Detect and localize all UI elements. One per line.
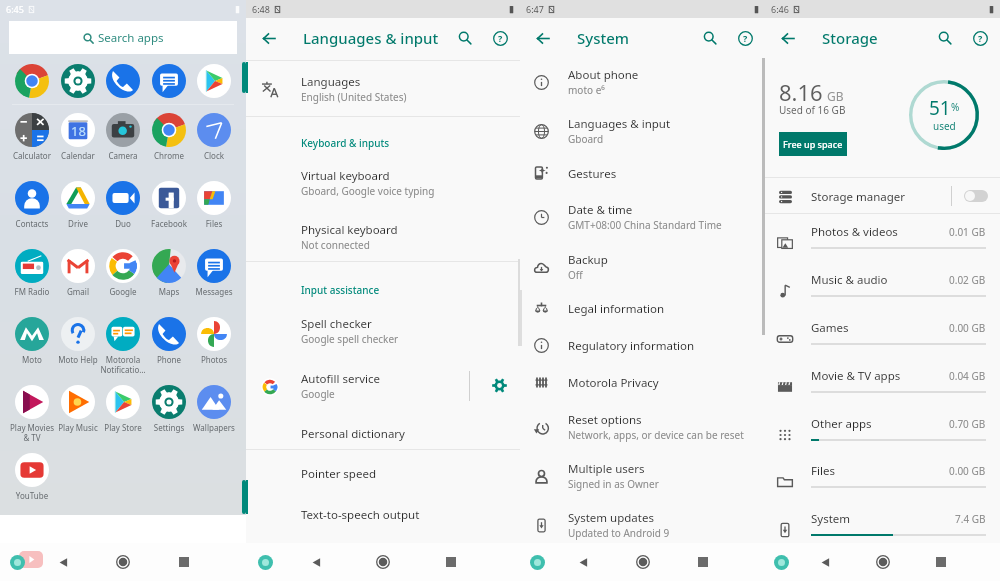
button[interactable]: Home xyxy=(632,543,654,581)
button[interactable]: FM Radio xyxy=(8,249,56,317)
button[interactable]: Help xyxy=(488,26,512,50)
button[interactable]: Back xyxy=(531,26,555,50)
button[interactable]: Languages & input xyxy=(520,104,765,153)
button[interactable]: Calculator xyxy=(8,113,56,181)
button[interactable]: Legal information xyxy=(520,288,765,325)
button[interactable]: System xyxy=(765,501,1000,549)
staticText: Maps xyxy=(145,286,193,297)
staticText: Drive xyxy=(54,218,102,229)
button[interactable]: Back xyxy=(814,543,836,581)
button[interactable]: Photos xyxy=(190,317,238,385)
button[interactable]: Drive xyxy=(54,181,102,249)
button[interactable]: Search xyxy=(698,26,722,50)
button[interactable]: Assistant xyxy=(254,543,276,581)
button[interactable]: Help xyxy=(968,26,992,50)
button[interactable]: Free up space xyxy=(779,132,847,156)
button[interactable]: Movie & TV apps xyxy=(765,358,1000,406)
button[interactable]: Maps xyxy=(145,249,193,317)
button[interactable]: Languages xyxy=(246,61,520,116)
button[interactable]: Phone xyxy=(145,317,193,385)
button[interactable]: Personal dictionary xyxy=(246,413,520,449)
button[interactable]: Reset options xyxy=(520,399,765,448)
button[interactable]: System updates xyxy=(520,497,765,546)
button[interactable]: Recents xyxy=(692,543,714,581)
button[interactable]: Wallpapers xyxy=(190,385,238,453)
button[interactable]: Motorola Notificatio… xyxy=(99,317,147,385)
button[interactable]: Pointer speed xyxy=(246,452,520,493)
staticText: Play Music xyxy=(54,422,102,433)
button[interactable]: Assistant xyxy=(6,543,28,581)
button[interactable]: Search apps xyxy=(9,21,237,54)
button[interactable] xyxy=(54,64,102,104)
button[interactable]: Back xyxy=(305,543,327,581)
staticText: ? xyxy=(498,32,503,44)
button[interactable]: Chrome xyxy=(145,113,193,181)
staticText: Google spell checker xyxy=(301,332,399,346)
button[interactable]: 18 xyxy=(54,113,102,181)
button[interactable]: Files xyxy=(765,453,1000,501)
button[interactable]: Recents xyxy=(173,543,195,581)
button[interactable]: Back xyxy=(776,26,800,50)
button[interactable]: Music & audio xyxy=(765,262,1000,310)
button[interactable]: Recents xyxy=(440,543,462,581)
button[interactable]: Text-to-speech output xyxy=(246,493,520,534)
button[interactable]: Photos & videos xyxy=(765,214,1000,262)
button[interactable]: Help xyxy=(733,26,757,50)
button[interactable]: Backup xyxy=(520,239,765,288)
button[interactable]: Messages xyxy=(190,249,238,317)
button[interactable]: Date & time xyxy=(520,190,765,239)
button[interactable]: Clock xyxy=(190,113,238,181)
button[interactable]: Motorola Privacy xyxy=(520,362,765,399)
button[interactable]: Duo xyxy=(99,181,147,249)
button[interactable]: Spell checker xyxy=(246,303,520,358)
button[interactable]: Camera xyxy=(99,113,147,181)
button[interactable]: Assistant xyxy=(770,543,792,581)
staticText: 0.00 GB xyxy=(949,464,986,478)
button[interactable] xyxy=(190,64,238,104)
button[interactable]: Google xyxy=(99,249,147,317)
button[interactable]: Back xyxy=(572,543,594,581)
staticText: Search apps xyxy=(98,30,164,46)
button[interactable]: Recents xyxy=(930,543,952,581)
staticText: Play Movies & TV xyxy=(8,422,56,443)
button[interactable]: Physical keyboard xyxy=(246,209,520,261)
button[interactable]: Play Store xyxy=(99,385,147,453)
button[interactable]: Search xyxy=(933,26,957,50)
button[interactable]: Storage manager toggle xyxy=(964,190,988,202)
button[interactable]: Storage manager xyxy=(765,178,1000,213)
button[interactable]: Play Music xyxy=(54,385,102,453)
button[interactable]: Home xyxy=(872,543,894,581)
button[interactable]: Facebook xyxy=(145,181,193,249)
button[interactable]: Virtual keyboard xyxy=(246,155,520,209)
button[interactable]: Moto xyxy=(8,317,56,385)
button[interactable]: Home xyxy=(372,543,394,581)
button[interactable]: Gestures xyxy=(520,153,765,190)
button[interactable]: Other apps xyxy=(765,406,1000,454)
button[interactable]: Files xyxy=(190,181,238,249)
button[interactable]: Back xyxy=(257,26,281,50)
button[interactable]: Autofill settings xyxy=(479,358,520,413)
button[interactable]: Moto Help xyxy=(54,317,102,385)
button[interactable]: Contacts xyxy=(8,181,56,249)
button[interactable]: Home xyxy=(112,543,134,581)
button[interactable]: Regulatory information xyxy=(520,325,765,362)
button[interactable]: Assistant xyxy=(526,543,548,581)
staticText: Legal information xyxy=(568,301,665,317)
button[interactable]: Settings xyxy=(145,385,193,453)
button[interactable]: YouTube xyxy=(8,453,56,521)
button[interactable]: Games xyxy=(765,310,1000,358)
staticText: 6:47 xyxy=(526,3,544,15)
staticText: 6:48 xyxy=(252,3,270,15)
button[interactable] xyxy=(8,64,56,104)
button[interactable]: Search xyxy=(453,26,477,50)
staticText: Gmail xyxy=(54,286,102,297)
button[interactable]: Gmail xyxy=(54,249,102,317)
button[interactable]: Autofill service xyxy=(246,358,520,413)
button[interactable]: Back xyxy=(52,543,74,581)
button[interactable] xyxy=(145,64,193,104)
staticText: 0.00 GB xyxy=(949,321,986,335)
button[interactable]: About phone xyxy=(520,55,765,104)
button[interactable]: Play Movies & TV xyxy=(8,385,56,453)
button[interactable]: Multiple users xyxy=(520,448,765,497)
button[interactable] xyxy=(99,64,147,104)
